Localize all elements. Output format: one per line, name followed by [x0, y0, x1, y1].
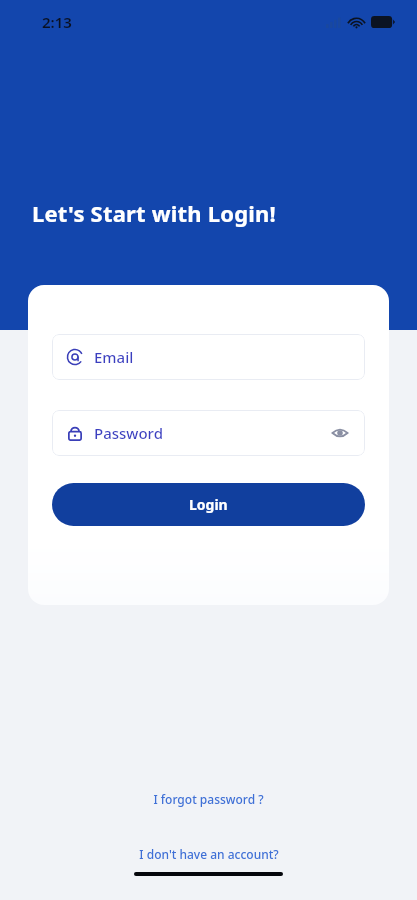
button[interactable]: I forgot password ? — [141, 785, 276, 813]
button[interactable]: I don't have an account? — [127, 840, 291, 868]
button[interactable]: Password — [52, 410, 365, 456]
staticText: Password — [94, 423, 163, 443]
staticText: 2:13 — [42, 12, 72, 32]
button[interactable]: Show password — [329, 422, 351, 444]
staticText: Email — [94, 347, 134, 367]
staticText: Login — [189, 495, 228, 514]
button[interactable]: Login — [52, 483, 365, 526]
staticText: I forgot password ? — [153, 791, 264, 807]
staticText: I don't have an account? — [139, 846, 279, 862]
staticText: Let's Start with Login! — [32, 198, 276, 228]
button[interactable]: Email — [52, 334, 365, 380]
